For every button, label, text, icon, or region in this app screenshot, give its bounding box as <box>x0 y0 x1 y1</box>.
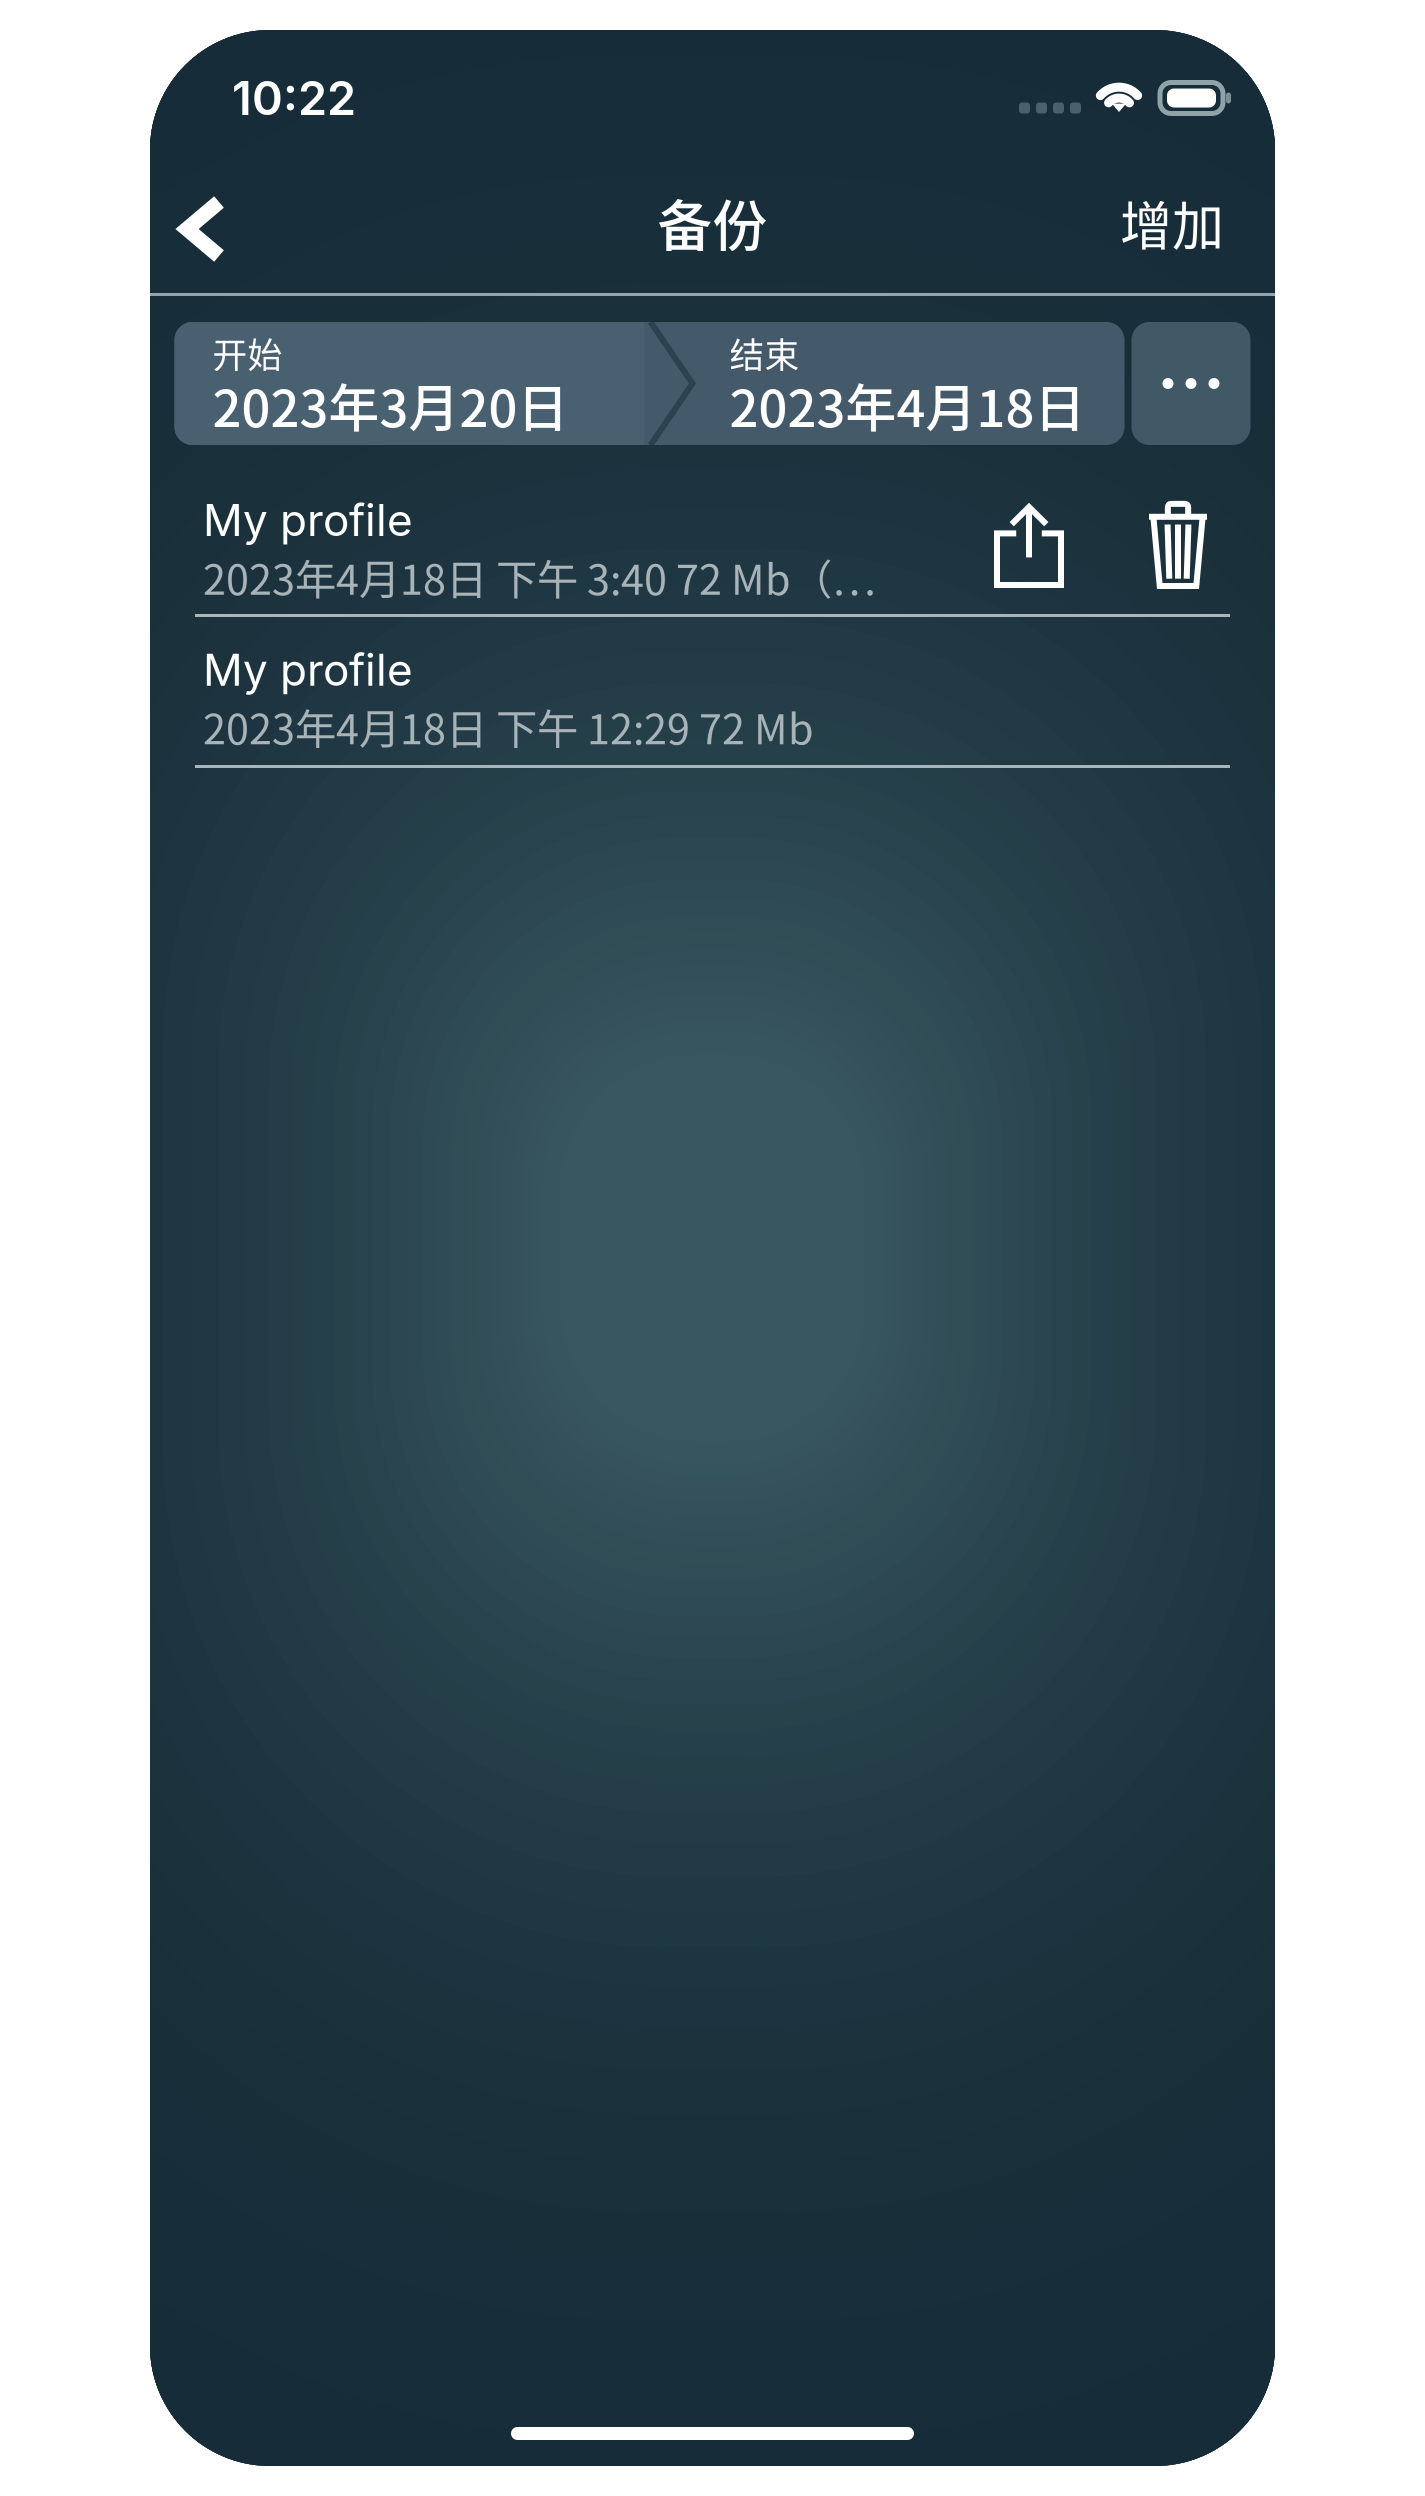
staticText: 备份 <box>657 182 767 262</box>
staticText: My profile <box>203 643 413 696</box>
staticText: 开始 <box>212 328 282 378</box>
button[interactable]: 开始 <box>174 322 691 445</box>
button[interactable]: Share <box>961 466 1117 608</box>
staticText: 2023年4月18日 下午 12:29 72 Mb <box>203 696 814 756</box>
staticText: 结束 <box>729 328 799 378</box>
button[interactable]: Delete <box>1117 466 1233 608</box>
button[interactable]: 增加 <box>1099 179 1248 296</box>
button[interactable]: 结束 <box>691 322 1124 445</box>
staticText: 10:22 <box>232 70 356 126</box>
staticText: 2023年4月18日 下午 3:40 72 Mb（… <box>203 547 876 607</box>
staticText: 增加 <box>1120 185 1224 260</box>
staticText: 2023年3月20日 <box>212 368 568 442</box>
staticText: My profile <box>203 493 413 547</box>
staticText: 2023年4月18日 <box>729 368 1085 442</box>
button[interactable]: More options <box>1131 322 1250 445</box>
button[interactable]: Back <box>172 182 256 293</box>
